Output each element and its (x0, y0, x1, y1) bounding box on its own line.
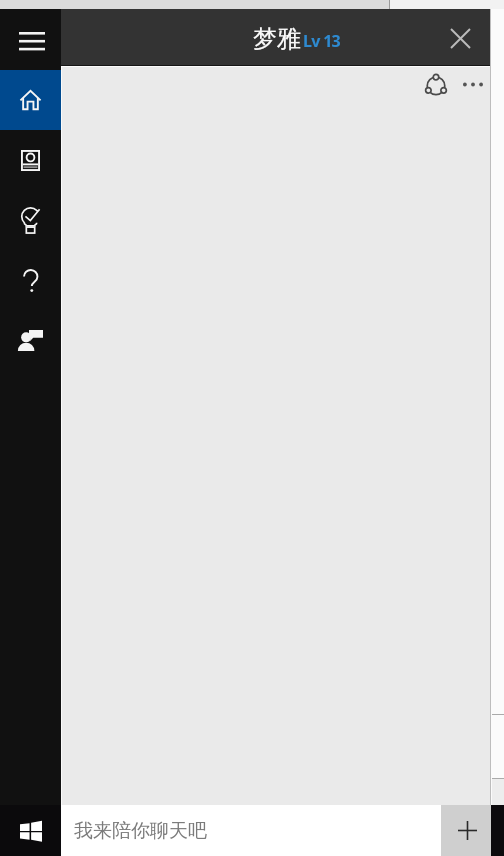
button[interactable]: Start (0, 805, 61, 856)
button[interactable]: More options (459, 71, 486, 98)
button[interactable]: Skills (0, 190, 61, 250)
button[interactable]: Share (422, 71, 449, 98)
staticText: 梦雅 (253, 24, 301, 54)
button[interactable]: Close (437, 14, 483, 60)
button[interactable]: Add (441, 805, 491, 856)
staticText: Lv 13 (303, 30, 341, 52)
button[interactable]: Gallery (0, 130, 61, 190)
button[interactable]: Home (0, 70, 61, 130)
staticText: 我来陪你聊天吧 (74, 819, 207, 843)
button[interactable]: Feedback (0, 310, 61, 370)
button[interactable]: Help (0, 250, 61, 310)
button[interactable]: Menu (0, 9, 61, 70)
